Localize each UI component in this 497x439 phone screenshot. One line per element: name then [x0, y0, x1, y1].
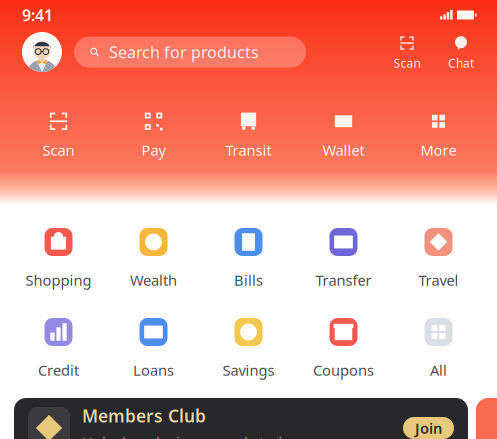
button[interactable]: All	[391, 295, 486, 385]
button[interactable]: Search for products	[74, 36, 306, 67]
staticText: Loans	[133, 360, 174, 380]
staticText: More	[420, 140, 456, 160]
button[interactable]: Wallet	[296, 107, 391, 161]
staticText: Members Club	[82, 404, 206, 427]
staticText: Join	[415, 418, 442, 438]
button[interactable]: Next banner	[476, 398, 497, 439]
button[interactable]: Travel	[391, 205, 486, 295]
button[interactable]: Profile	[22, 32, 62, 72]
button[interactable]: Wealth	[106, 205, 201, 295]
staticText: Search for products	[109, 41, 259, 63]
staticText: Coupons	[313, 360, 374, 380]
staticText: Scan	[42, 140, 74, 160]
button[interactable]: Messages	[444, 35, 478, 69]
staticText: Shopping	[25, 270, 91, 290]
staticText: Unlock exclusive rewards today	[82, 432, 297, 439]
button[interactable]: Scan code	[390, 35, 424, 69]
button[interactable]: Pay	[106, 107, 201, 161]
staticText: Bills	[234, 270, 263, 290]
staticText: Wealth	[130, 270, 177, 290]
button[interactable]: Shopping	[11, 205, 106, 295]
staticText: 9:41	[22, 4, 53, 26]
staticText: Transit	[225, 140, 271, 160]
staticText: Scan	[393, 55, 420, 71]
staticText: Travel	[418, 270, 458, 290]
staticText: All	[430, 360, 447, 380]
staticText: Credit	[38, 360, 79, 380]
staticText: Wallet	[322, 140, 364, 160]
staticText: Savings	[222, 360, 274, 380]
staticText: Chat	[448, 55, 474, 71]
button[interactable]: Members Club	[14, 398, 468, 439]
button[interactable]: Transit	[201, 107, 296, 161]
button[interactable]: Coupons	[296, 295, 391, 385]
button[interactable]: Scan	[11, 107, 106, 161]
staticText: Pay	[141, 140, 165, 160]
button[interactable]: Transfer	[296, 205, 391, 295]
button[interactable]: Bills	[201, 205, 296, 295]
staticText: Transfer	[315, 270, 371, 290]
button[interactable]: Credit	[11, 295, 106, 385]
button[interactable]: More	[391, 107, 486, 161]
button[interactable]: Savings	[201, 295, 296, 385]
button[interactable]: Loans	[106, 295, 201, 385]
